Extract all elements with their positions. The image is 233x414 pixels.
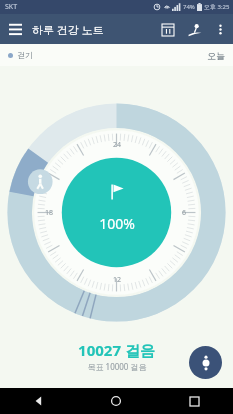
staticText: 74% (183, 3, 195, 11)
button[interactable]: Home (77, 388, 155, 414)
staticText: 오늘 (207, 50, 225, 61)
staticText: SKT (5, 2, 18, 12)
staticText: 목표 10000 걸음 (87, 361, 147, 372)
button[interactable]: More options (208, 17, 233, 42)
button[interactable]: Recents (155, 388, 233, 414)
staticText: 6 (182, 208, 187, 218)
staticText: 오후 3:25 (204, 3, 230, 11)
staticText: 12 (113, 275, 122, 285)
button[interactable]: Back (0, 388, 77, 414)
button[interactable]: More actions (189, 346, 222, 379)
button[interactable]: 오늘 (207, 50, 225, 61)
staticText: 걷기 (17, 50, 33, 60)
button[interactable]: Location (181, 16, 208, 43)
staticText: 100% (99, 214, 135, 233)
button[interactable]: 걷기 (8, 50, 33, 60)
staticText: 18 (45, 208, 54, 218)
staticText: 하루 건강 노트 (32, 22, 104, 37)
staticText: 10027 걸음 (78, 340, 155, 360)
button[interactable]: Calendar (154, 16, 181, 43)
button[interactable]: Menu (0, 14, 30, 44)
staticText: 24 (113, 140, 122, 150)
